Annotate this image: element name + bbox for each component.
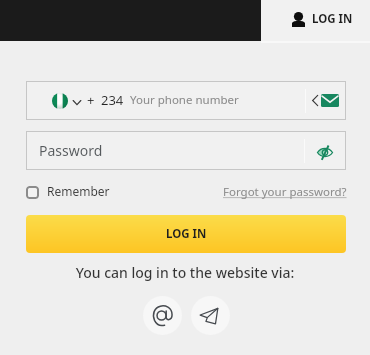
staticText: LOG IN — [166, 226, 207, 242]
button[interactable]: Forgot your password? — [222, 181, 346, 203]
button[interactable]: Log in with Telegram — [191, 296, 230, 335]
button[interactable]: Remember — [26, 181, 110, 203]
staticText: Password — [39, 141, 103, 160]
staticText: + — [87, 91, 95, 109]
staticText: Your phone number — [130, 92, 239, 108]
button[interactable]: Password — [26, 131, 346, 170]
button[interactable]: Log in with e-mail — [143, 296, 182, 335]
staticText: LOG IN — [312, 11, 353, 27]
staticText: Remember — [47, 183, 110, 199]
button[interactable]: Select country code — [26, 81, 346, 120]
button[interactable]: Log in with e-mail instead — [306, 81, 346, 120]
button[interactable]: Select country code — [26, 81, 87, 120]
button[interactable]: LOG IN — [26, 215, 346, 253]
staticText: You can log in to the website via: — [0, 263, 370, 282]
button[interactable]: LOG IN — [261, 0, 370, 41]
button[interactable]: Show password — [305, 131, 346, 170]
staticText: Forgot your password? — [223, 184, 347, 200]
staticText: 234 — [101, 91, 124, 109]
